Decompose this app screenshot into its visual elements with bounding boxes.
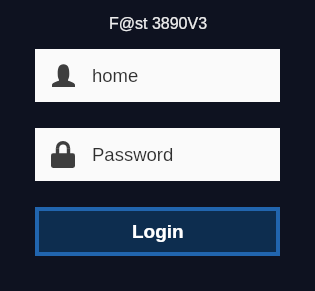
button[interactable]: Login (39, 211, 276, 252)
staticText: Login (132, 221, 184, 242)
staticText: F@st 3890V3 (109, 15, 208, 33)
other: Password (51, 141, 75, 168)
other: User name (52, 64, 75, 87)
button[interactable]: Password (35, 128, 280, 181)
button[interactable]: User name (35, 49, 280, 102)
staticText: Password (92, 144, 174, 165)
staticText: home (92, 65, 139, 86)
